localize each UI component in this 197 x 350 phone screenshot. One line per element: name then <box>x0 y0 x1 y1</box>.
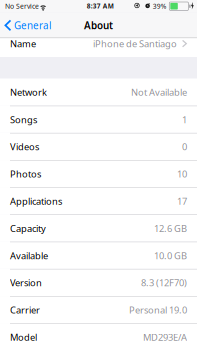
staticText: MD293E/A <box>143 331 187 343</box>
staticText: iPhone de Santiago <box>93 37 177 50</box>
staticText: About <box>84 19 113 32</box>
staticText: 10 <box>177 168 187 180</box>
staticText: 1 <box>182 113 187 126</box>
button[interactable]: Model <box>0 323 197 350</box>
button[interactable]: Carrier <box>0 296 197 323</box>
button[interactable]: Applications <box>0 187 197 214</box>
button[interactable]: Version <box>0 269 197 296</box>
staticText: 0 <box>182 140 187 153</box>
staticText: 10.0 GB <box>154 249 187 262</box>
staticText: Songs <box>10 113 37 126</box>
button[interactable]: Name <box>0 30 197 57</box>
staticText: Applications <box>10 195 62 207</box>
staticText: No Service <box>5 2 39 11</box>
staticText: Available <box>10 249 48 262</box>
button[interactable]: Network <box>0 78 197 106</box>
staticText: Capacity <box>10 222 46 235</box>
staticText: Videos <box>10 140 39 153</box>
staticText: Not Available <box>131 86 187 98</box>
staticText: Carrier <box>10 304 40 316</box>
button[interactable]: Songs <box>0 106 197 133</box>
staticText: Name <box>10 37 36 50</box>
staticText: 12.6 GB <box>154 222 187 235</box>
staticText: 8:37 AM <box>87 2 114 10</box>
button[interactable]: Videos <box>0 133 197 160</box>
staticText: 17 <box>177 195 187 207</box>
button[interactable]: General <box>0 13 58 38</box>
staticText: General <box>14 19 52 32</box>
button[interactable]: Available <box>0 242 197 269</box>
staticText: 8.3 (12F70) <box>141 276 187 289</box>
staticText: Personal 19.0 <box>129 304 187 316</box>
staticText: 39% <box>153 2 167 11</box>
button[interactable]: Capacity <box>0 214 197 242</box>
staticText: Network <box>10 86 47 98</box>
button[interactable]: Photos <box>0 160 197 187</box>
staticText: Model <box>10 331 37 343</box>
staticText: Version <box>10 276 42 289</box>
staticText: Photos <box>10 168 41 180</box>
